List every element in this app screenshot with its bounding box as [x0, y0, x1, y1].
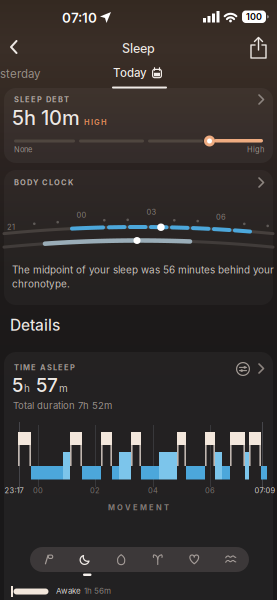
- staticText: 00: [33, 486, 43, 495]
- button[interactable]: Back: [2, 32, 26, 62]
- staticText: m: [59, 383, 68, 394]
- staticText: The midpoint of your sleep was 56 minute…: [12, 264, 274, 290]
- staticText: Yesterday: [0, 67, 40, 81]
- button[interactable]: Breathing: [139, 547, 176, 572]
- staticText: 06: [205, 486, 215, 495]
- staticText: 100: [246, 11, 262, 22]
- staticText: T I M E A S L E E P: [14, 363, 75, 372]
- staticText: Total duration 7h 52m: [13, 400, 112, 411]
- staticText: 02: [90, 486, 100, 495]
- button[interactable]: S L E E P D E B T: [4, 88, 273, 163]
- button[interactable]: Adjust: [236, 362, 250, 376]
- staticText: 57: [31, 374, 58, 396]
- staticText: Details: [10, 316, 60, 334]
- staticText: Sleep: [122, 41, 155, 56]
- staticText: None: [14, 145, 32, 154]
- staticText: 06: [216, 212, 226, 221]
- staticText: S L E E P D E B T: [14, 95, 69, 104]
- button[interactable]: Yesterday: [0, 67, 40, 81]
- staticText: M O V E M E N T: [108, 503, 169, 512]
- button[interactable]: Today: [113, 66, 162, 80]
- staticText: 5h 10m: [12, 106, 80, 130]
- staticText: 5: [12, 374, 23, 396]
- staticText: 07:09: [254, 486, 275, 495]
- button[interactable]: T I M E A S L E E P: [4, 352, 273, 600]
- staticText: B O D Y C L O C K: [14, 178, 73, 187]
- staticText: High: [247, 145, 264, 154]
- button[interactable]: Energy: [103, 547, 139, 572]
- button[interactable]: Snoring: [212, 547, 249, 572]
- staticText: 1h 56m: [84, 586, 111, 595]
- button[interactable]: Share: [246, 34, 272, 62]
- button[interactable]: Heart rate: [176, 547, 212, 572]
- staticText: 03: [146, 207, 156, 216]
- button[interactable]: B O D Y C L O C K: [4, 170, 273, 305]
- staticText: 07:10: [62, 10, 97, 26]
- staticText: 00: [76, 210, 86, 219]
- staticText: h: [24, 383, 30, 394]
- staticText: 04: [148, 486, 158, 495]
- staticText: Today: [113, 66, 147, 80]
- staticText: 21: [7, 222, 15, 231]
- button[interactable]: Sleep: [66, 547, 103, 572]
- staticText: 23:17: [4, 486, 23, 495]
- staticText: H I G H: [84, 118, 107, 127]
- button[interactable]: Movement: [30, 547, 66, 572]
- staticText: Awake: [56, 586, 81, 595]
